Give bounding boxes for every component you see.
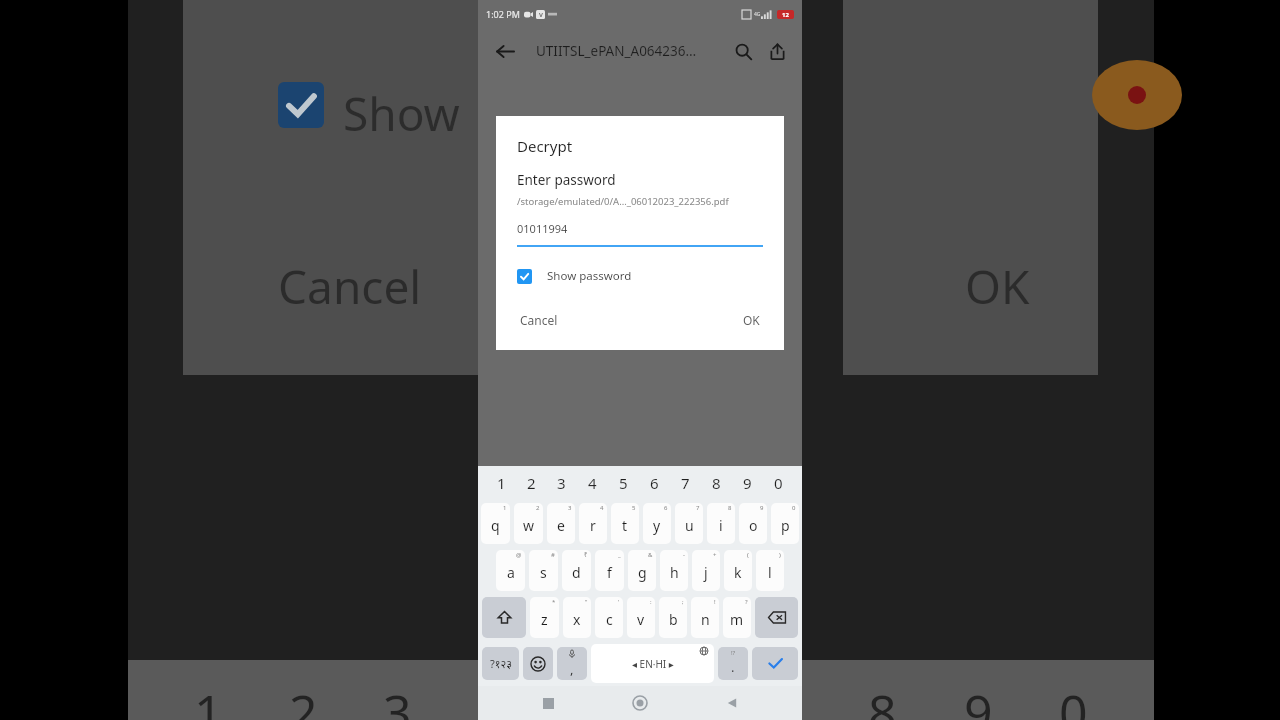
- button[interactable]: 7: [670, 466, 701, 500]
- staticText: 1: [497, 473, 506, 493]
- staticText: OK: [743, 312, 760, 328]
- button[interactable]: ": [563, 597, 591, 638]
- staticText: 8: [728, 504, 732, 512]
- staticText: Decrypt: [517, 136, 573, 156]
- button[interactable]: 5: [608, 466, 639, 500]
- button[interactable]: Key: [482, 647, 519, 680]
- staticText: 0: [792, 504, 796, 512]
- staticText: OK: [965, 255, 1030, 318]
- staticText: Cancel: [278, 255, 422, 318]
- button[interactable]: ': [595, 597, 623, 638]
- staticText: &: [648, 551, 653, 559]
- button[interactable]: 8: [701, 466, 732, 500]
- staticText: 2: [289, 678, 318, 720]
- staticText: 12: [782, 11, 789, 19]
- button[interactable]: 7: [675, 503, 703, 544]
- staticText: k: [734, 563, 742, 582]
- button[interactable]: #: [529, 550, 558, 591]
- button[interactable]: 4: [577, 466, 608, 500]
- staticText: 6: [664, 504, 668, 512]
- button[interactable]: +: [692, 550, 720, 591]
- staticText: t: [622, 516, 628, 535]
- button[interactable]: _: [595, 550, 624, 591]
- button[interactable]: Recent apps: [526, 686, 570, 720]
- button[interactable]: 8: [707, 503, 735, 544]
- staticText: 2: [527, 473, 536, 493]
- staticText: _: [618, 551, 621, 559]
- staticText: o: [749, 516, 758, 535]
- button[interactable]: Key: [718, 647, 748, 680]
- staticText: 4G: [754, 11, 761, 18]
- button[interactable]: Key: [752, 647, 798, 680]
- button[interactable]: 1: [481, 503, 510, 544]
- staticText: ◂ EN·HI ▸: [632, 657, 674, 671]
- button[interactable]: !: [691, 597, 719, 638]
- button[interactable]: 01011994: [517, 221, 763, 247]
- button[interactable]: OK: [737, 307, 766, 333]
- button[interactable]: Key: [523, 647, 553, 680]
- staticText: Show password: [547, 268, 632, 284]
- button[interactable]: 3: [546, 466, 577, 500]
- staticText: r: [590, 516, 596, 535]
- staticText: 1: [503, 504, 507, 512]
- button[interactable]: Key: [482, 597, 526, 638]
- button[interactable]: Back: [488, 34, 522, 68]
- button[interactable]: Cancel: [514, 307, 564, 333]
- staticText: 7: [681, 473, 690, 493]
- button[interactable]: ?: [723, 597, 751, 638]
- staticText: /storage/emulated/0/A…_06012023_222356.p…: [517, 195, 729, 208]
- staticText: m: [730, 610, 744, 629]
- staticText: h: [670, 563, 679, 582]
- button[interactable]: Back: [710, 686, 754, 720]
- button[interactable]: ₹: [562, 550, 591, 591]
- staticText: y: [653, 516, 661, 535]
- button[interactable]: :: [627, 597, 655, 638]
- button[interactable]: 2: [514, 503, 543, 544]
- button[interactable]: Search: [726, 34, 760, 68]
- button[interactable]: 5: [611, 503, 639, 544]
- button[interactable]: &: [628, 550, 656, 591]
- staticText: 3: [383, 678, 412, 720]
- button[interactable]: 9: [739, 503, 767, 544]
- button[interactable]: 6: [639, 466, 670, 500]
- staticText: !: [714, 598, 716, 606]
- staticText: e: [557, 516, 565, 535]
- button[interactable]: *: [530, 597, 559, 638]
- button[interactable]: Home: [618, 686, 662, 720]
- staticText: w: [523, 516, 535, 535]
- staticText: Enter password: [517, 171, 616, 189]
- staticText: c: [606, 610, 613, 629]
- staticText: 5: [632, 504, 636, 512]
- button[interactable]: @: [496, 550, 525, 591]
- button[interactable]: ;: [659, 597, 687, 638]
- button[interactable]: Key: [755, 597, 798, 638]
- button[interactable]: 6: [643, 503, 671, 544]
- button[interactable]: Key: [557, 647, 587, 680]
- button[interactable]: Show password: [517, 268, 763, 284]
- staticText: ': [618, 598, 620, 606]
- staticText: g: [638, 563, 647, 582]
- staticText: d: [572, 563, 581, 582]
- button[interactable]: -: [660, 550, 688, 591]
- button[interactable]: Space: [591, 644, 714, 683]
- staticText: 5: [619, 473, 628, 493]
- button[interactable]: 2: [516, 466, 546, 500]
- button[interactable]: 9: [732, 466, 763, 500]
- staticText: 9: [743, 473, 752, 493]
- staticText: j: [704, 563, 708, 582]
- button[interactable]: 4: [579, 503, 607, 544]
- button[interactable]: (: [724, 550, 752, 591]
- button[interactable]: 0: [771, 503, 799, 544]
- button[interactable]: ): [756, 550, 784, 591]
- button[interactable]: Share: [760, 34, 794, 68]
- staticText: 9: [964, 678, 993, 720]
- button[interactable]: 0: [763, 466, 794, 500]
- staticText: b: [669, 610, 678, 629]
- staticText: V: [539, 11, 543, 19]
- staticText: 0: [774, 473, 783, 493]
- staticText: Cancel: [520, 312, 558, 328]
- button[interactable]: 3: [547, 503, 575, 544]
- button[interactable]: 1: [486, 466, 516, 500]
- staticText: n: [701, 610, 710, 629]
- staticText: v: [637, 610, 645, 629]
